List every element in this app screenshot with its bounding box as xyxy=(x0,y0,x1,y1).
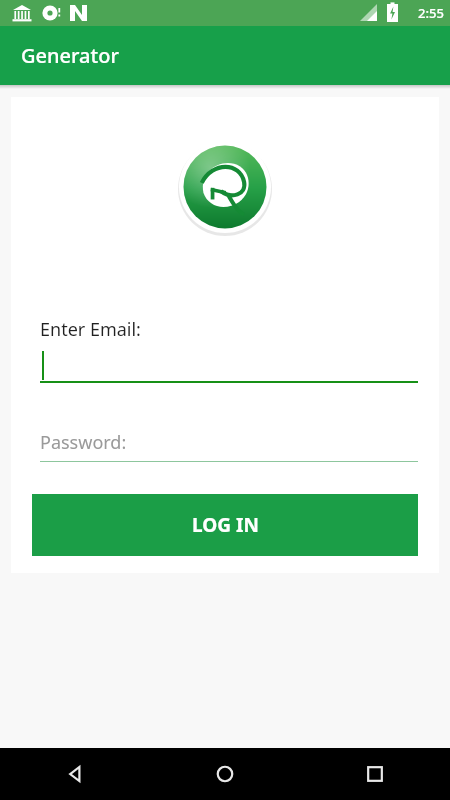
staticText: Enter Email: xyxy=(40,317,141,342)
button[interactable]: Enter Email: xyxy=(40,317,418,383)
staticText: LOG IN xyxy=(192,512,259,538)
button[interactable]: LOG IN xyxy=(32,494,418,556)
button[interactable]: Recent apps xyxy=(300,748,450,800)
button[interactable]: Home xyxy=(150,748,300,800)
staticText: Password: xyxy=(40,430,127,455)
staticText: Generator xyxy=(21,42,119,69)
staticText: 2:55 xyxy=(418,4,444,22)
button[interactable]: Password: xyxy=(40,430,418,462)
button[interactable]: Back xyxy=(0,748,150,800)
